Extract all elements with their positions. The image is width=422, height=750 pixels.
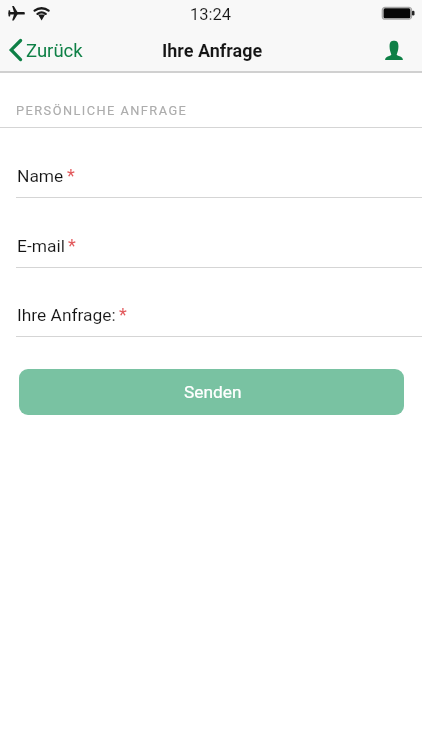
staticText: Name	[17, 166, 64, 186]
button[interactable]: Senden	[19, 369, 404, 415]
staticText: Senden	[184, 382, 242, 402]
staticText: *	[119, 304, 127, 325]
staticText: Ihre Anfrage:	[17, 305, 116, 325]
button[interactable]: Ihre Anfrage:	[0, 295, 422, 338]
staticText: Zurück	[26, 40, 83, 62]
staticText: E-mail	[17, 236, 65, 256]
button[interactable]: E-mail	[0, 226, 422, 269]
button[interactable]: Zurück	[5, 33, 87, 67]
staticText: 13:24	[190, 5, 232, 24]
staticText: Ihre Anfrage	[162, 40, 263, 61]
staticText: PERSÖNLICHE ANFRAGE	[16, 103, 188, 118]
button[interactable]: Profil	[385, 41, 422, 60]
staticText: *	[67, 165, 75, 186]
staticText: *	[68, 235, 76, 256]
button[interactable]: Name	[0, 156, 422, 199]
